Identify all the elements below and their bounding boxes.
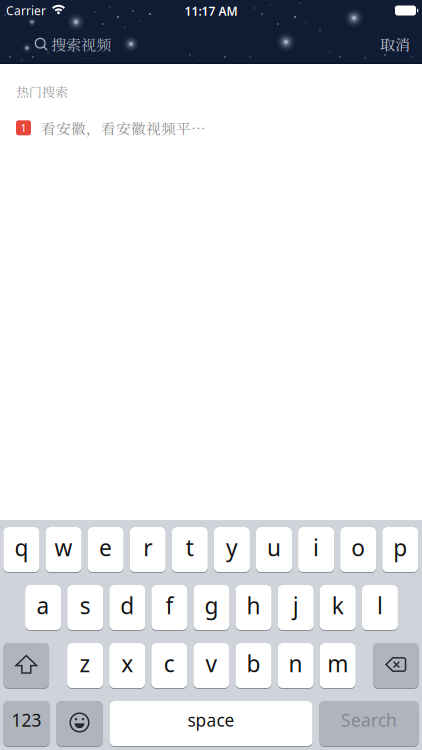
staticText: u — [267, 532, 281, 562]
button[interactable]: i — [298, 527, 334, 573]
staticText: 热门搜索 — [16, 82, 68, 101]
button[interactable]: u — [256, 527, 292, 573]
button[interactable]: Shift — [4, 643, 49, 689]
button[interactable]: r — [130, 527, 166, 573]
button[interactable]: x — [109, 643, 145, 689]
staticText: 11:17 AM — [184, 3, 237, 19]
button[interactable]: Search — [319, 701, 418, 747]
staticText: t — [186, 532, 194, 562]
button[interactable]: w — [45, 527, 81, 573]
staticText: b — [246, 648, 260, 678]
staticText: Search — [341, 708, 397, 731]
staticText: j — [293, 590, 299, 620]
button[interactable]: c — [151, 643, 187, 689]
staticText: 123 — [11, 708, 41, 731]
button[interactable]: Delete — [373, 643, 419, 689]
staticText: x — [121, 648, 133, 678]
staticText: c — [164, 648, 175, 678]
staticText: i — [313, 532, 319, 562]
staticText: p — [393, 532, 407, 562]
button[interactable]: t — [172, 527, 208, 573]
staticText: 取消 — [380, 33, 410, 55]
button[interactable]: space — [109, 701, 312, 747]
button[interactable]: b — [235, 643, 271, 689]
staticText: f — [165, 590, 173, 620]
staticText: a — [37, 590, 50, 620]
button[interactable]: g — [193, 585, 229, 631]
staticText: l — [377, 590, 383, 620]
button[interactable]: k — [320, 585, 356, 631]
button[interactable]: m — [320, 643, 356, 689]
button[interactable]: p — [382, 527, 418, 573]
staticText: 搜索视频 — [51, 33, 111, 55]
staticText: q — [14, 532, 28, 562]
button[interactable]: 取消 — [380, 33, 410, 55]
button[interactable]: 1 — [0, 101, 206, 138]
staticText: v — [205, 648, 217, 678]
button[interactable]: e — [88, 527, 124, 573]
staticText: n — [289, 648, 303, 678]
staticText: o — [351, 532, 365, 562]
button[interactable]: Emoji — [56, 701, 102, 747]
staticText: g — [204, 590, 218, 620]
button[interactable]: z — [67, 643, 103, 689]
button[interactable]: y — [214, 527, 250, 573]
staticText: z — [80, 648, 91, 678]
staticText: d — [120, 590, 134, 620]
button[interactable]: l — [362, 585, 398, 631]
button[interactable]: d — [109, 585, 145, 631]
button[interactable]: n — [278, 643, 314, 689]
button[interactable]: v — [193, 643, 229, 689]
button[interactable]: q — [3, 527, 39, 573]
staticText: space — [187, 708, 234, 731]
button[interactable]: 123 — [3, 701, 49, 747]
staticText: m — [327, 648, 348, 678]
staticText: y — [226, 532, 238, 562]
button[interactable]: a — [25, 585, 61, 631]
button[interactable]: h — [236, 585, 272, 631]
staticText: w — [54, 532, 72, 562]
button[interactable]: s — [67, 585, 103, 631]
button[interactable]: 搜索视频 — [34, 33, 111, 55]
staticText: h — [247, 590, 261, 620]
button[interactable]: o — [340, 527, 376, 573]
staticText: Carrier — [6, 2, 46, 18]
staticText: e — [99, 532, 112, 562]
staticText: r — [143, 532, 152, 562]
button[interactable]: f — [151, 585, 187, 631]
button[interactable]: j — [278, 585, 314, 631]
staticText: s — [80, 590, 91, 620]
staticText: 1 — [20, 121, 26, 135]
staticText: k — [332, 590, 344, 620]
staticText: 看安徽，看安徽视频平⋯ — [41, 117, 206, 138]
